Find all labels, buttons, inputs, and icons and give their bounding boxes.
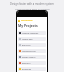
staticText: Roadmap [22,68,32,71]
staticText: build polished apps in minutes [15,7,50,10]
staticText: Research [22,62,31,65]
staticText: Design tokens [22,56,36,59]
button[interactable]: Website redesign [18,31,46,35]
button[interactable]: Design tokens [18,55,46,59]
button[interactable]: Brand kit [18,43,46,47]
staticText: Mobile app [22,38,33,41]
button[interactable]: Mobile app [18,37,46,41]
button[interactable]: Roadmap [18,67,46,71]
staticText: Brand kit [22,44,31,47]
staticText: Website redesign [22,32,39,35]
button[interactable]: Marketing site [18,49,46,53]
staticText: My Projects [18,23,38,28]
staticText: Dashboard [21,19,33,22]
staticText: Design faster with a modern system [10,2,54,6]
button[interactable]: Research [18,61,46,65]
staticText: Marketing site [22,50,36,53]
